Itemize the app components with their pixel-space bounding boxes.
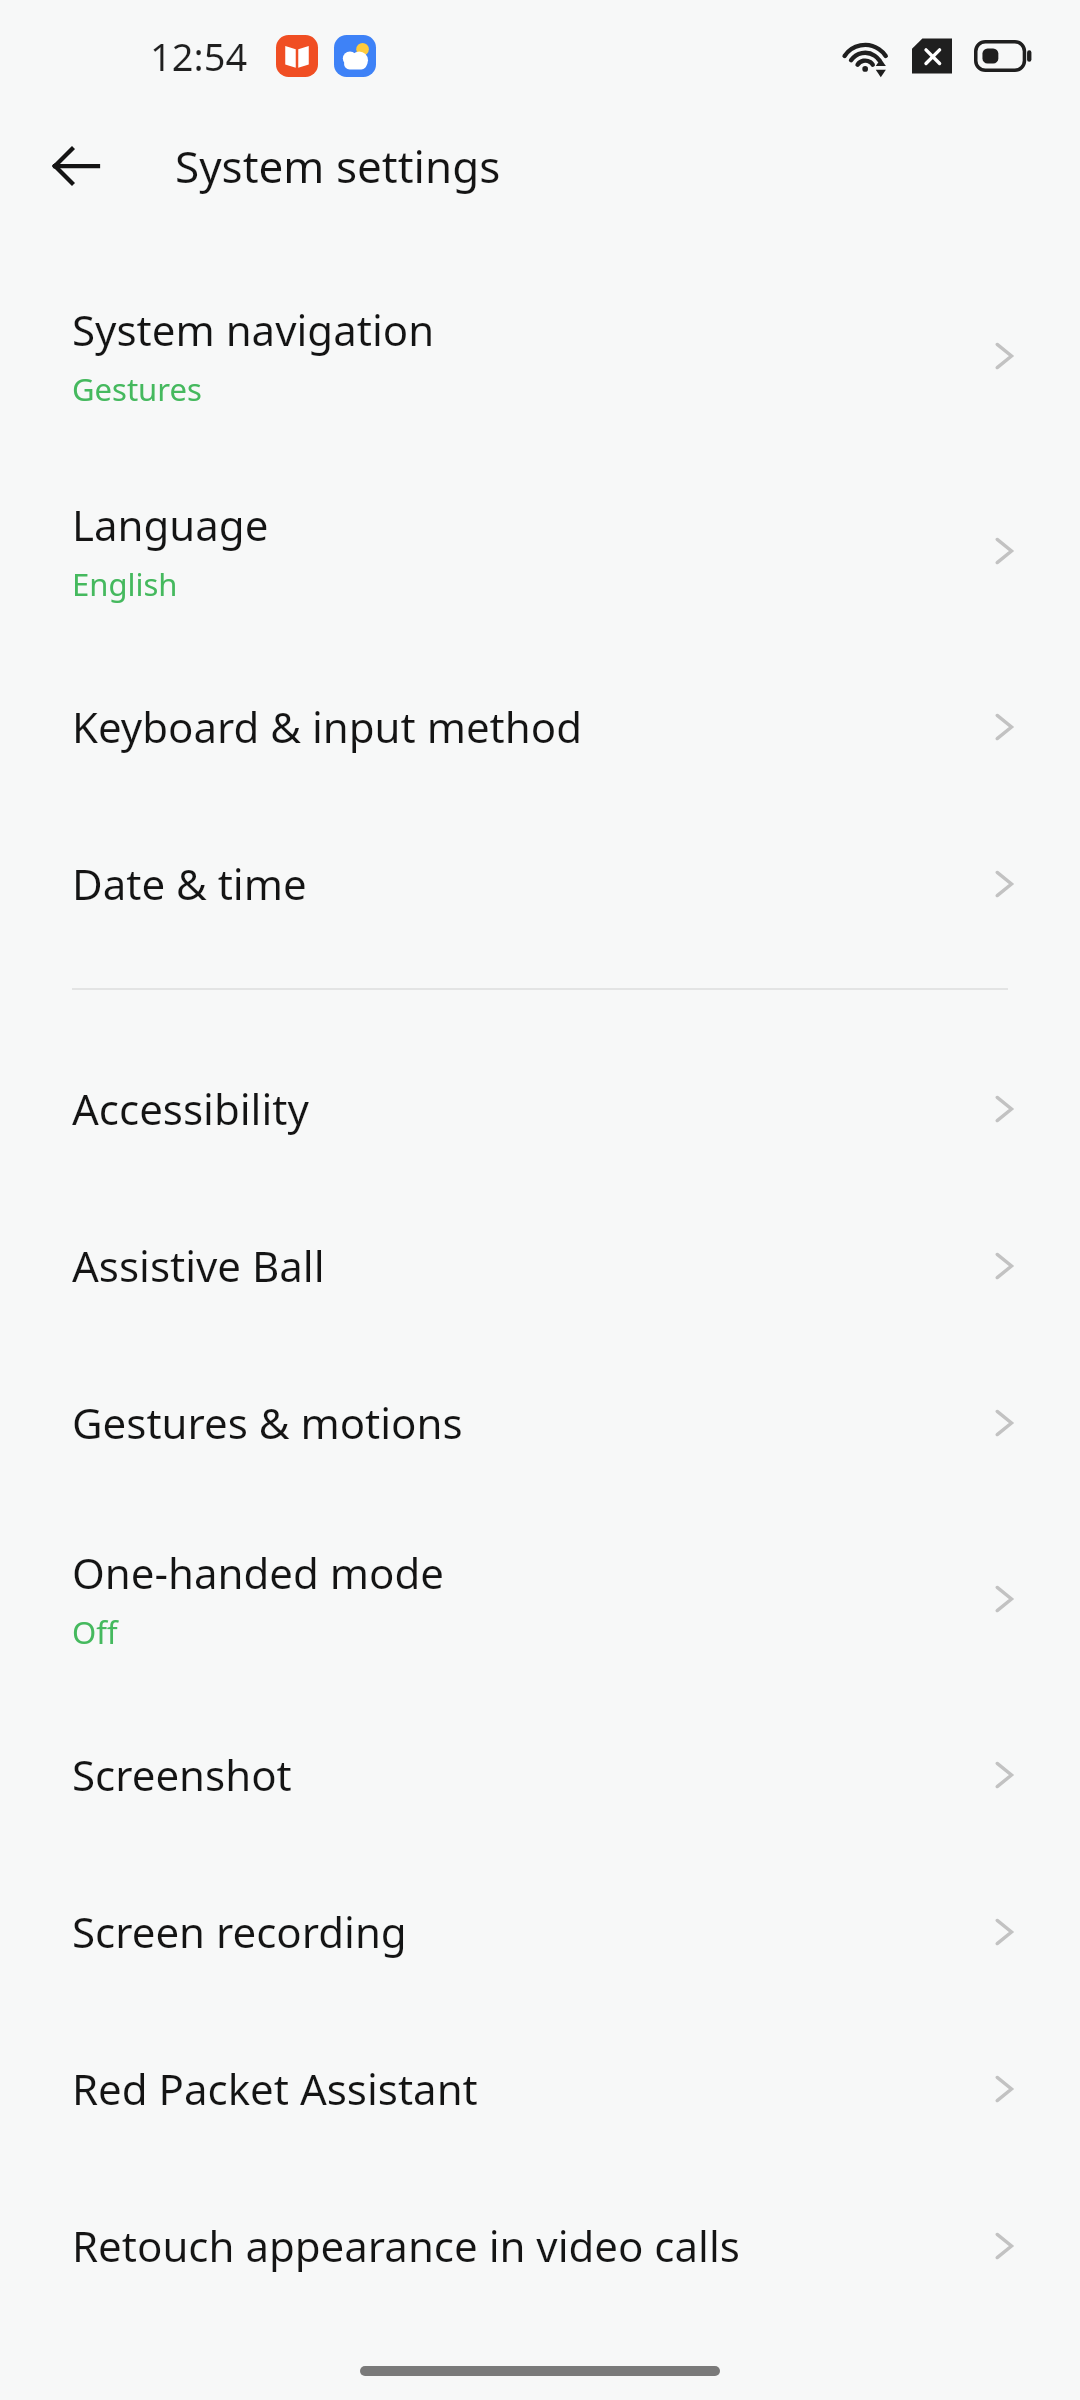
staticText: Red Packet Assistant xyxy=(72,2060,478,2117)
button[interactable]: One-handed mode xyxy=(0,1501,1080,1696)
staticText: Language xyxy=(72,496,269,553)
staticText: Screenshot xyxy=(72,1746,292,1803)
button[interactable]: Accessibility xyxy=(0,1030,1080,1187)
button[interactable]: Retouch appearance in video calls xyxy=(0,2167,1080,2324)
staticText: One-handed mode xyxy=(72,1544,444,1601)
button[interactable]: Screen recording xyxy=(0,1853,1080,2010)
staticText: System settings xyxy=(175,136,501,196)
button[interactable]: Screenshot xyxy=(0,1696,1080,1853)
staticText: Date & time xyxy=(72,855,307,912)
button[interactable]: Keyboard & input method xyxy=(0,648,1080,805)
staticText: System navigation xyxy=(72,301,435,358)
staticText: Keyboard & input method xyxy=(72,698,582,755)
staticText: Off xyxy=(72,1611,118,1653)
staticText: Accessibility xyxy=(72,1080,309,1137)
button[interactable]: Assistive Ball xyxy=(0,1187,1080,1344)
button[interactable]: System navigation xyxy=(0,258,1080,453)
button[interactable]: Back xyxy=(38,128,114,204)
staticText: Gestures xyxy=(72,368,202,410)
staticText: Gestures & motions xyxy=(72,1394,463,1451)
staticText: 12:54 xyxy=(150,30,248,82)
staticText: English xyxy=(72,563,178,605)
staticText: Retouch appearance in video calls xyxy=(72,2217,740,2274)
button[interactable]: Language xyxy=(0,453,1080,648)
button[interactable]: Gestures & motions xyxy=(0,1344,1080,1501)
button[interactable]: Red Packet Assistant xyxy=(0,2010,1080,2167)
staticText: Screen recording xyxy=(72,1903,407,1960)
button[interactable]: Date & time xyxy=(0,805,1080,962)
staticText: Assistive Ball xyxy=(72,1237,325,1294)
